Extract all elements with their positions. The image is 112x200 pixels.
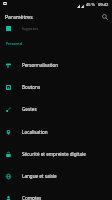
button[interactable]: Gestes [0,98,112,120]
button[interactable]: Langue et saisie [0,165,112,187]
staticText: Langue et saisie [22,173,57,179]
staticText: Suggestions [22,27,39,31]
staticText: Comptes [22,195,42,200]
staticText: Gestes [22,106,37,112]
staticText: 45 % [86,2,95,7]
button[interactable]: Personnalisation [0,54,112,76]
staticText: Personnel [6,41,23,46]
button[interactable]: Comptes [0,187,112,200]
staticText: 09:42 [98,2,109,7]
button[interactable]: Localisation [0,121,112,143]
other: Notification [3,2,7,5]
button[interactable]: Suggestions [0,23,112,34]
button[interactable]: Boutons [0,76,112,98]
staticText: Personnalisation [22,62,59,68]
button[interactable]: Rechercher [99,11,110,22]
staticText: Sécurité et empreinte digitale [22,151,86,157]
staticText: Boutons [22,84,41,90]
staticText: Localisation [22,129,48,135]
button[interactable]: Sécurité et empreinte digitale [0,143,112,165]
staticText: Paramètres [5,14,33,21]
